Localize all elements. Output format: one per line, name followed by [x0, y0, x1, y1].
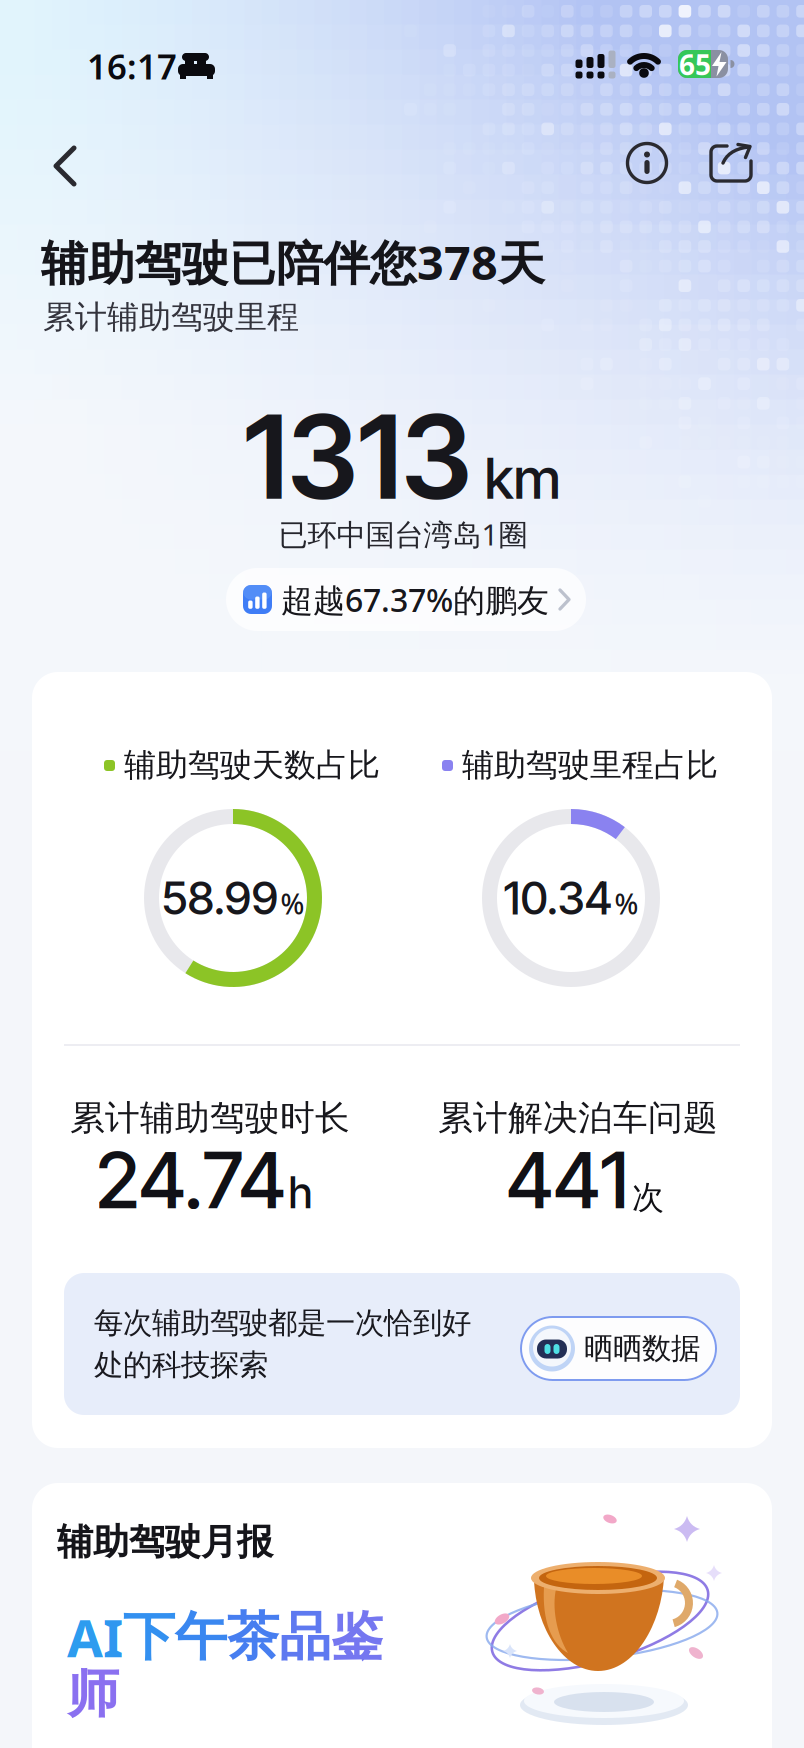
staticText: 超越67.37%的鹏友 [281, 578, 549, 621]
staticText: 鉴 [331, 1605, 383, 1669]
staticText: 441 [506, 1133, 629, 1227]
button[interactable]: 晒晒数据 [520, 1316, 717, 1381]
staticText: 58.99 [161, 871, 278, 925]
button[interactable]: Info [625, 141, 669, 185]
staticText: 下 [123, 1605, 175, 1669]
staticText: 午 [175, 1605, 227, 1669]
staticText: 次 [632, 1178, 664, 1217]
staticText: 已环中国台湾岛1圈 [278, 514, 527, 553]
staticText: 10.34 [503, 871, 612, 925]
staticText: I [103, 1602, 123, 1672]
staticText: 65 [679, 46, 711, 83]
staticText: 茶 [227, 1605, 279, 1669]
staticText: 晒晒数据 [584, 1330, 700, 1366]
staticText: A [67, 1602, 103, 1672]
staticText: 辅助驾驶月报 [57, 1520, 273, 1564]
staticText: 16:17 [87, 43, 177, 89]
staticText: 辅助驾驶已陪伴您378天 [41, 231, 545, 293]
button[interactable]: Back [48, 144, 92, 188]
staticText: km [484, 444, 560, 512]
button[interactable]: 超越67.37%的鹏友 [226, 568, 586, 631]
button[interactable]: 辅助驾驶月报 [32, 1483, 772, 1748]
staticText: % [280, 885, 304, 922]
staticText: 1313 [243, 388, 471, 526]
staticText: 累计解决泊车问题 [438, 1097, 718, 1139]
staticText: 师 [67, 1662, 119, 1726]
staticText: 辅助驾驶里程占比 [462, 745, 718, 785]
staticText: 辅助驾驶天数占比 [124, 745, 380, 785]
staticText: h [288, 1167, 312, 1218]
staticText: 24.74 [95, 1133, 285, 1227]
staticText: % [614, 885, 638, 922]
staticText: 累计辅助驾驶里程 [43, 297, 299, 337]
staticText: 品 [279, 1605, 331, 1669]
staticText: 每次辅助驾驶都是一次恰到好 [94, 1305, 471, 1341]
button[interactable]: Share [707, 141, 755, 185]
staticText: 累计辅助驾驶时长 [70, 1097, 350, 1139]
staticText: 处的科技探索 [94, 1347, 268, 1383]
